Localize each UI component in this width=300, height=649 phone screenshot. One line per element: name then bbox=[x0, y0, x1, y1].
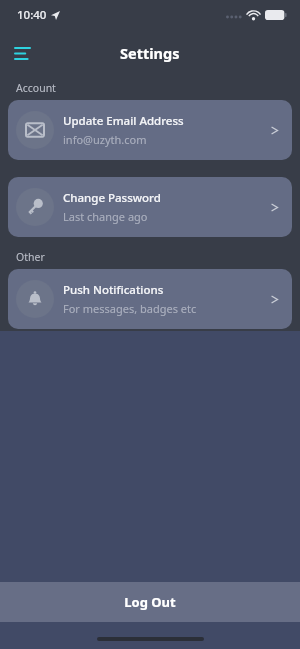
staticText: Last change ago bbox=[63, 209, 148, 224]
button[interactable]: Log Out bbox=[0, 582, 300, 622]
staticText: Account bbox=[16, 81, 56, 95]
staticText: Settings bbox=[120, 43, 180, 63]
button[interactable]: Change Password bbox=[8, 177, 292, 237]
staticText: Other bbox=[16, 250, 45, 264]
staticText: For messages, badges etc bbox=[63, 301, 197, 316]
button[interactable]: Menu bbox=[4, 35, 40, 71]
staticText: info@uzyth.com bbox=[63, 132, 147, 147]
staticText: Update Email Address bbox=[63, 113, 184, 129]
staticText: Push Notifications bbox=[63, 282, 164, 298]
button[interactable]: Push Notifications bbox=[8, 269, 292, 329]
staticText: Log Out bbox=[124, 593, 176, 611]
staticText: 10:40 bbox=[17, 7, 47, 23]
staticText: Change Password bbox=[63, 190, 161, 206]
button[interactable]: Update Email Address bbox=[8, 100, 292, 160]
